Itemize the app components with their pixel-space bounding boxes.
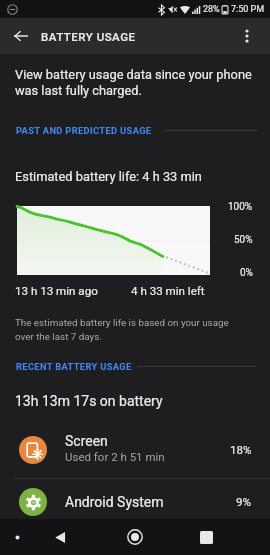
staticText: 7:50 PM <box>231 4 265 15</box>
button[interactable]: Back <box>45 522 75 552</box>
staticText: 100% <box>228 201 253 213</box>
staticText: Android System <box>65 494 164 510</box>
button[interactable]: Home <box>120 522 150 552</box>
button[interactable]: Assistant <box>6 526 28 548</box>
button[interactable]: Recents <box>191 522 221 552</box>
staticText: Used for 2 h 51 min <box>65 450 165 463</box>
button[interactable]: Back <box>3 18 39 54</box>
staticText: The estimated battery life is based on y… <box>15 317 229 342</box>
staticText: PAST AND PREDICTED USAGE <box>16 125 152 136</box>
staticText: 9% <box>236 495 252 509</box>
staticText: 18% <box>230 443 252 457</box>
staticText: 13 h 13 min ago <box>15 284 98 298</box>
staticText: 50% <box>234 234 253 246</box>
staticText: View battery usage data since your phone… <box>15 67 252 98</box>
staticText: Estimated battery life: 4 h 33 min <box>15 169 202 184</box>
button[interactable]: More options <box>229 18 265 54</box>
staticText: Screen <box>65 433 108 449</box>
staticText: 13h 13m 17s on battery <box>15 393 163 409</box>
staticText: 0% <box>240 267 253 279</box>
staticText: RECENT BATTERY USAGE <box>16 361 132 372</box>
staticText: 28% <box>203 4 220 15</box>
button[interactable]: Screen <box>0 420 270 479</box>
staticText: BATTERY USAGE <box>41 30 136 43</box>
staticText: 4 h 33 min left <box>131 284 205 298</box>
button[interactable]: Android System <box>0 479 270 525</box>
